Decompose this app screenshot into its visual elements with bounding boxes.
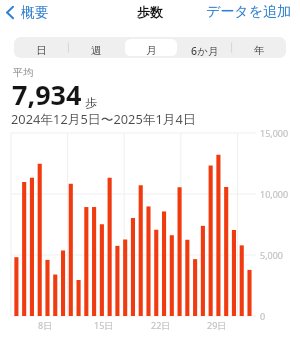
staticText: 月 (146, 44, 157, 57)
staticText: 歩 (85, 95, 97, 110)
staticText: 平均 (13, 66, 33, 79)
staticText: 8日 (38, 319, 53, 331)
staticText: データを追加 (206, 3, 291, 21)
staticText: 歩数 (137, 4, 163, 20)
staticText: 週 (91, 44, 102, 57)
staticText: 日 (36, 44, 47, 57)
button[interactable]: 概要 (0, 0, 54, 24)
staticText: 29日 (207, 319, 227, 331)
staticText: 7,934 (12, 76, 82, 113)
button[interactable]: データを追加 (202, 0, 300, 24)
staticText: 概要 (21, 4, 48, 21)
button[interactable]: 日 (14, 37, 69, 58)
staticText: 年 (254, 44, 265, 57)
button[interactable]: 年 (232, 37, 286, 58)
staticText: 2024年12月5日〜2025年1月4日 (11, 110, 196, 127)
button[interactable]: 6か月 (178, 37, 232, 58)
button[interactable]: 月 (124, 37, 178, 58)
staticText: 5,000 (260, 249, 284, 261)
staticText: 0 (260, 310, 266, 322)
staticText: 10,000 (260, 188, 289, 200)
staticText: 15,000 (260, 127, 289, 139)
staticText: 6か月 (191, 44, 219, 58)
staticText: 15日 (94, 319, 114, 331)
button[interactable]: 週 (69, 37, 124, 58)
staticText: 22日 (151, 319, 171, 331)
